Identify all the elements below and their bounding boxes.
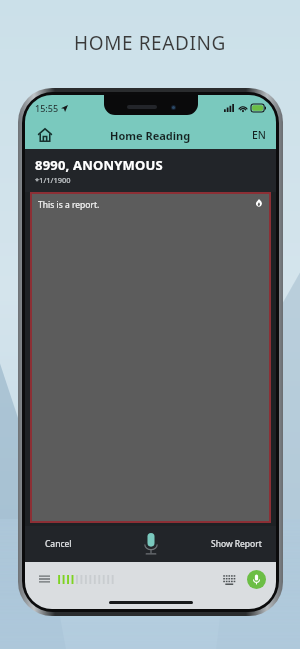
button[interactable]: Record xyxy=(136,529,166,559)
staticText: EN xyxy=(252,128,266,142)
staticText: *1/1/1900 xyxy=(35,175,71,185)
staticText: HOME READING xyxy=(74,30,226,56)
button[interactable]: Cancel xyxy=(39,532,78,556)
button[interactable]: Menu xyxy=(35,570,53,588)
button[interactable]: Home xyxy=(33,123,57,147)
staticText: 15:55 xyxy=(35,102,59,114)
button[interactable]: Keyboard xyxy=(219,569,239,589)
staticText: 8990, ANONYMOUS xyxy=(35,156,163,174)
staticText: Show Report xyxy=(211,538,262,550)
staticText: This is a report. xyxy=(38,199,100,211)
staticText: Cancel xyxy=(45,538,72,550)
button[interactable]: Dictate xyxy=(247,570,266,589)
button[interactable]: Highlight xyxy=(253,197,265,209)
staticText: Home Reading xyxy=(110,128,191,143)
button[interactable]: EN xyxy=(242,124,276,146)
button[interactable]: Show Report xyxy=(205,532,268,556)
button[interactable]: This is a report. xyxy=(32,194,269,521)
